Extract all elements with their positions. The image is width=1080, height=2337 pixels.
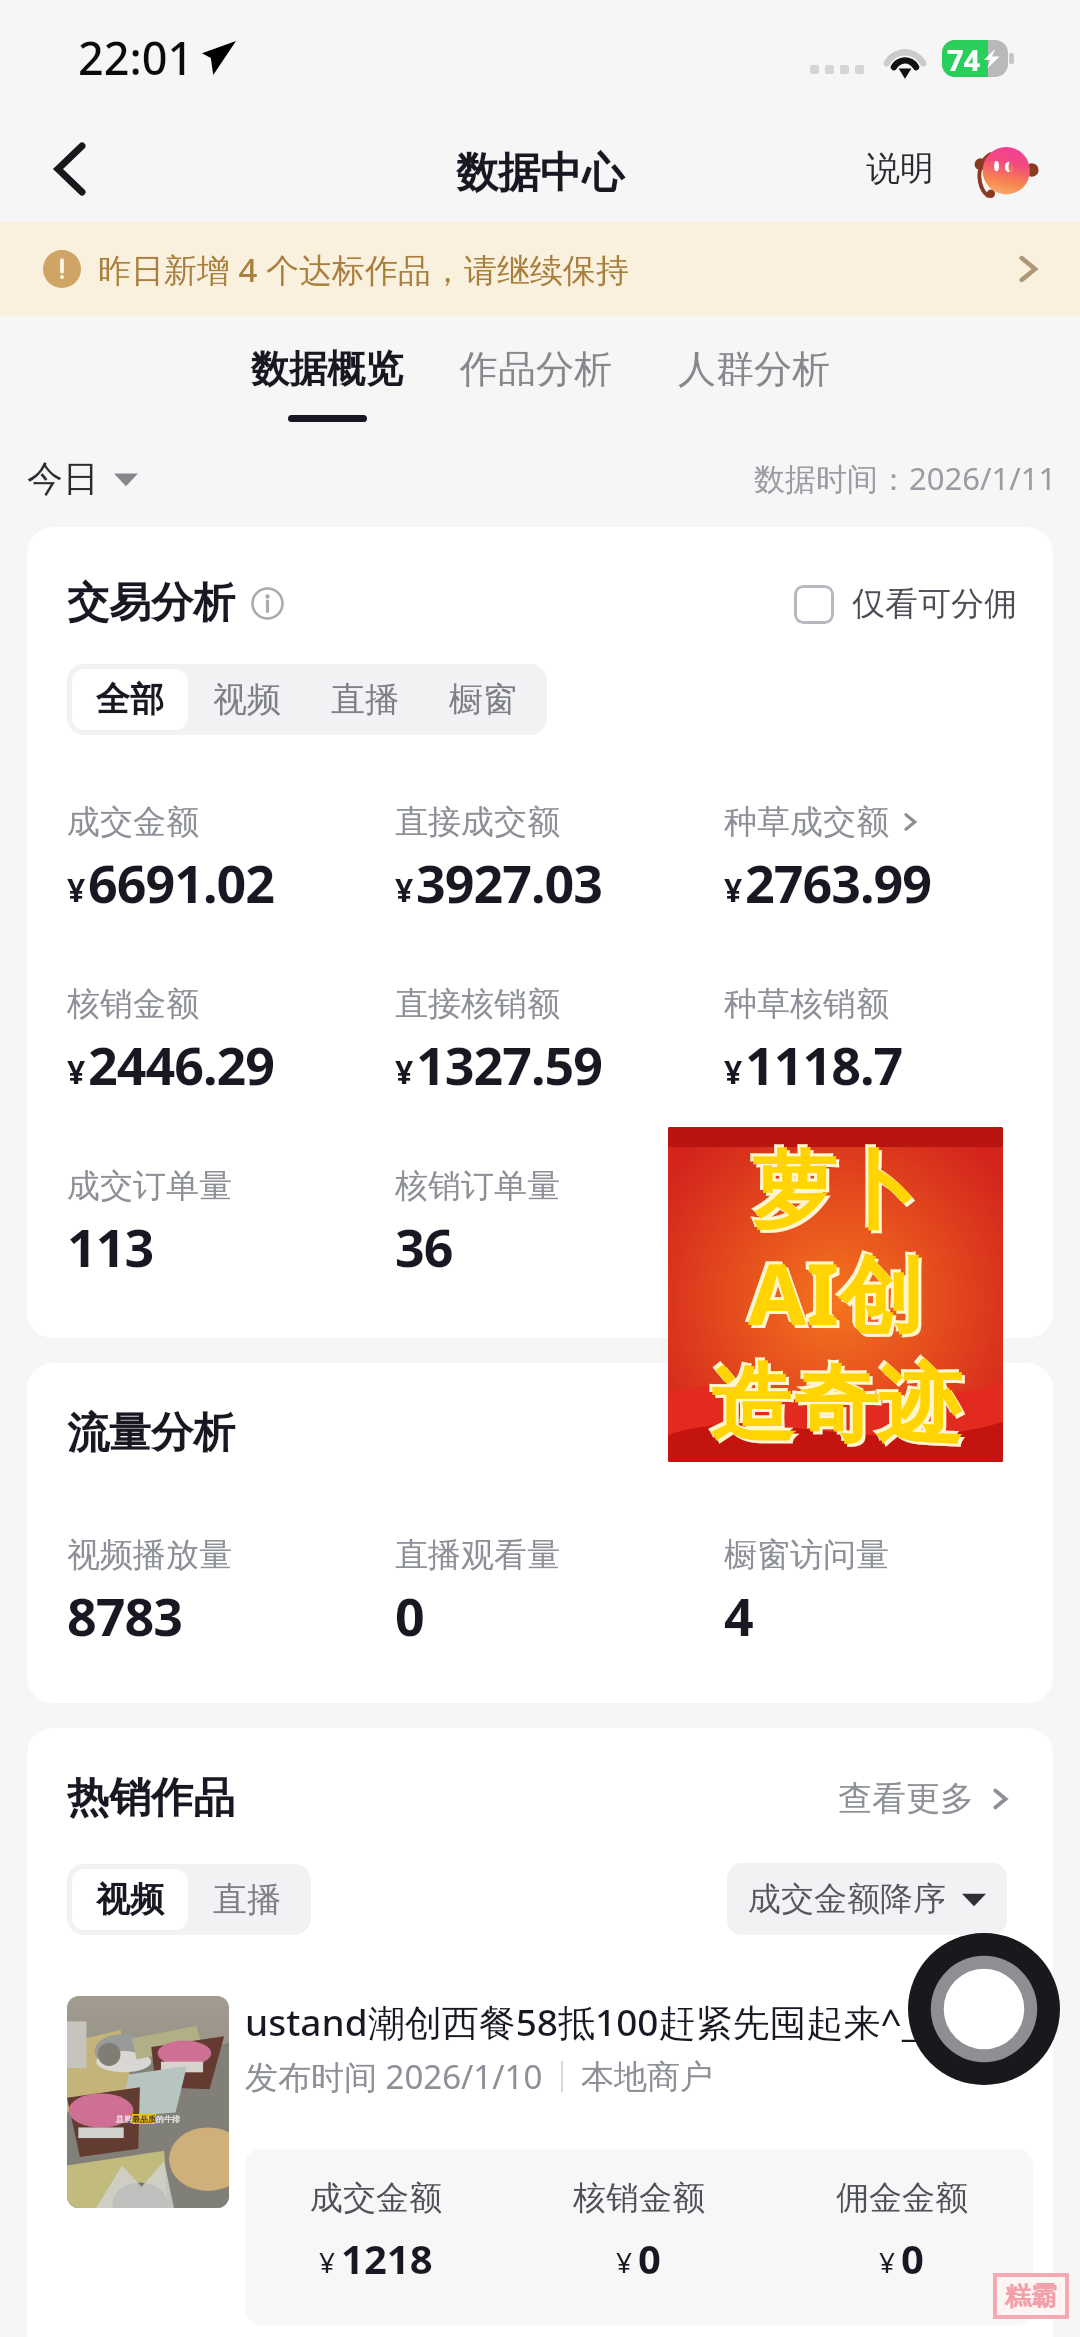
- button[interactable]: 直播: [306, 669, 424, 730]
- staticText: 成交金额: [310, 2177, 442, 2219]
- staticText: 22:01: [78, 27, 194, 88]
- button[interactable]: 说明: [856, 135, 944, 202]
- staticText: 视频播放量: [67, 1534, 232, 1576]
- staticText: 视频: [96, 1878, 164, 1921]
- button[interactable]: Back: [26, 123, 118, 215]
- staticText: ustand潮创西餐58抵100赶紧先囤起来^_: [245, 1996, 918, 2047]
- staticText: AI创: [751, 1238, 926, 1353]
- staticText: 昨日新增 4 个达标作品，请继续保持: [98, 247, 630, 292]
- staticText: 造奇迹: [707, 1349, 959, 1455]
- staticText: 8783: [67, 1580, 182, 1651]
- staticText: 全部: [96, 678, 164, 721]
- staticText: 查看更多: [838, 1777, 974, 1820]
- staticText: 成交金额降序: [748, 1878, 946, 1920]
- staticText: 1218: [341, 2231, 433, 2285]
- staticText: 2763.99: [745, 847, 932, 918]
- staticText: 74: [947, 40, 981, 77]
- staticText: 造奇迹: [713, 1355, 965, 1461]
- staticText: 1118.7: [745, 1029, 903, 1100]
- staticText: 核销金额: [67, 983, 199, 1025]
- staticText: ¥: [616, 2243, 633, 2281]
- staticText: 直播观看量: [395, 1534, 560, 1576]
- staticText: 直接成交额: [395, 801, 560, 843]
- button[interactable]: 人群分析: [678, 345, 830, 422]
- staticText: ¥: [319, 2243, 336, 2281]
- staticText: 仅看可分佣: [852, 583, 1017, 625]
- staticText: 橱窗: [449, 678, 517, 721]
- button[interactable]: 视频: [188, 669, 306, 730]
- staticText: 本地商户: [581, 2056, 713, 2098]
- staticText: 且购: [116, 2114, 132, 2124]
- staticText: AI创: [748, 1235, 923, 1350]
- button[interactable]: 数据概览: [251, 345, 403, 422]
- staticText: 核销订单量: [395, 1165, 560, 1207]
- button[interactable]: 作品分析: [460, 345, 612, 422]
- staticText: 发布时间 2026/1/10: [245, 2054, 543, 2099]
- staticText: 2446.29: [88, 1029, 275, 1100]
- button[interactable]: 成交金额降序: [727, 1863, 1007, 1935]
- staticText: 视频: [213, 678, 281, 721]
- button[interactable]: 视频: [72, 1869, 188, 1930]
- staticText: 直接核销额: [395, 983, 560, 1025]
- staticText: ¥: [395, 868, 414, 912]
- button[interactable]: 今日: [27, 456, 138, 501]
- staticText: 种草成交额: [724, 801, 889, 843]
- staticText: ¥: [879, 2243, 896, 2281]
- button[interactable]: Customer service: [970, 134, 1040, 204]
- staticText: 0: [395, 1580, 424, 1651]
- staticText: 橱窗访问量: [724, 1534, 889, 1576]
- staticText: 3927.03: [416, 847, 603, 918]
- staticText: 0: [901, 2231, 924, 2285]
- staticText: 4: [724, 1580, 753, 1651]
- staticText: 数据中心: [456, 147, 624, 200]
- staticText: 的牛排: [156, 2114, 180, 2124]
- staticText: ¥: [67, 1050, 86, 1094]
- staticText: 0: [638, 2231, 661, 2285]
- staticText: 造奇迹: [710, 1352, 962, 1458]
- staticText: 直播: [213, 1878, 281, 1921]
- button[interactable]: 仅看可分佣: [794, 583, 1017, 625]
- staticText: 流量分析: [67, 1407, 235, 1460]
- staticText: ¥: [724, 1050, 743, 1094]
- staticText: 数据时间：2026/1/11: [754, 457, 1057, 499]
- staticText: 1327.59: [416, 1029, 603, 1100]
- staticText: 作品分析: [460, 345, 612, 393]
- button[interactable]: 全部: [72, 669, 188, 730]
- staticText: 36: [395, 1211, 453, 1282]
- staticText: 萝卜: [749, 1136, 917, 1242]
- staticText: 成交订单量: [67, 1165, 232, 1207]
- staticText: 成交金额: [67, 801, 199, 843]
- staticText: 热销作品: [67, 1772, 235, 1825]
- staticText: ¥: [724, 868, 743, 912]
- staticText: AI创: [745, 1232, 920, 1347]
- staticText: 最品质: [132, 2114, 156, 2124]
- staticText: 萝卜: [755, 1142, 923, 1248]
- staticText: 种草核销额: [724, 983, 889, 1025]
- staticText: 数据概览: [251, 345, 403, 393]
- button[interactable]: 橱窗: [424, 669, 542, 730]
- button[interactable]: 直播: [188, 1869, 306, 1930]
- staticText: ¥: [395, 1050, 414, 1094]
- staticText: 今日: [27, 456, 99, 501]
- staticText: 人群分析: [678, 345, 830, 393]
- button[interactable]: 查看更多: [838, 1777, 1014, 1820]
- staticText: 直播: [331, 678, 399, 721]
- staticText: 113: [67, 1211, 154, 1282]
- staticText: 交易分析: [67, 577, 235, 630]
- button[interactable]: 昨日新增 4 个达标作品，请继续保持: [0, 222, 1080, 316]
- staticText: 6691.02: [88, 847, 275, 918]
- staticText: 萝卜: [752, 1139, 920, 1245]
- staticText: 说明: [866, 147, 934, 190]
- staticText: 核销金额: [573, 2177, 705, 2219]
- staticText: 糕霸: [1005, 2280, 1057, 2313]
- staticText: ¥: [67, 868, 86, 912]
- staticText: 佣金金额: [836, 2177, 968, 2219]
